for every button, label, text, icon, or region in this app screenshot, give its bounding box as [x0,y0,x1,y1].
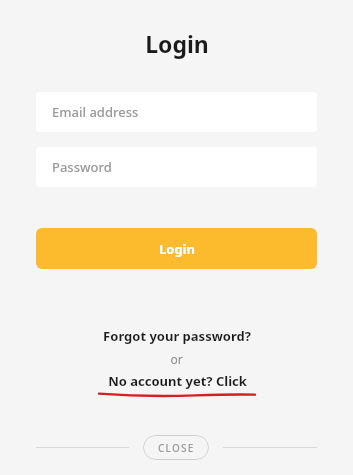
button[interactable]: Password [36,147,317,187]
staticText: or [170,351,183,367]
staticText: Email address [52,103,139,121]
staticText: Login [159,240,195,258]
button[interactable]: Login [36,228,317,269]
staticText: No account yet? Click [108,372,247,390]
button[interactable]: No account yet? Click [99,372,255,399]
button[interactable]: Close [143,435,209,460]
button[interactable]: Forgot your password? [103,327,251,345]
staticText: Login [145,28,209,59]
staticText: CLOSE [158,441,195,455]
staticText: Password [52,158,112,176]
staticText: Forgot your password? [103,327,251,345]
button[interactable]: Email address [36,92,317,132]
